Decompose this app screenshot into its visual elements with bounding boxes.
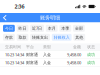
- button[interactable]: 10-23 14:34: [0, 59, 100, 66]
- staticText: 转账收入: [54, 35, 70, 40]
- button[interactable]: 转账支出: [30, 34, 50, 41]
- staticText: 其他: [75, 35, 83, 40]
- staticText: 2:36: [14, 3, 24, 10]
- staticText: 本月: [48, 26, 56, 31]
- staticText: 平台: [26, 45, 34, 49]
- staticText: 账务明细: [40, 14, 60, 21]
- staticText: 今日: [5, 26, 13, 31]
- button[interactable]: 本月: [46, 25, 58, 32]
- staticText: 财富通: [26, 52, 38, 57]
- staticText: 存款: [5, 35, 13, 40]
- button[interactable]: 转账收入: [52, 34, 72, 41]
- staticText: 入金: [43, 60, 51, 65]
- button[interactable]: 近7日: [30, 25, 44, 32]
- staticText: 入金: [43, 52, 51, 57]
- staticText: 昨日: [18, 26, 26, 31]
- button[interactable]: 10-23 14:34: [0, 51, 100, 58]
- staticText: 取款: [18, 35, 26, 40]
- staticText: 9,458.00: [67, 52, 81, 57]
- staticText: 10-23 14:34: [5, 60, 24, 65]
- staticText: 成功: [87, 52, 95, 57]
- staticText: 状态: [87, 45, 95, 49]
- staticText: 近7日: [32, 26, 42, 31]
- staticText: 转账支出: [32, 35, 48, 40]
- button[interactable]: 昨日: [17, 25, 28, 32]
- staticText: 10-23 14:34: [5, 52, 24, 57]
- button[interactable]: 全部: [73, 25, 85, 32]
- button[interactable]: 取款: [17, 34, 28, 41]
- staticText: 财富通: [26, 60, 38, 65]
- button[interactable]: Back: [0, 13, 10, 22]
- button[interactable]: 今日: [3, 25, 15, 32]
- button[interactable]: 存款: [3, 34, 15, 41]
- staticText: 交易时间: [5, 45, 21, 49]
- button[interactable]: 其他: [73, 34, 85, 41]
- button[interactable]: 本季: [59, 25, 71, 32]
- staticText: 类型: [43, 45, 51, 49]
- staticText: 成功: [87, 60, 95, 65]
- staticText: 全部: [75, 26, 83, 31]
- staticText: 金额: [73, 45, 81, 49]
- staticText: 本季: [61, 26, 69, 31]
- staticText: 9,458.00: [67, 60, 81, 65]
